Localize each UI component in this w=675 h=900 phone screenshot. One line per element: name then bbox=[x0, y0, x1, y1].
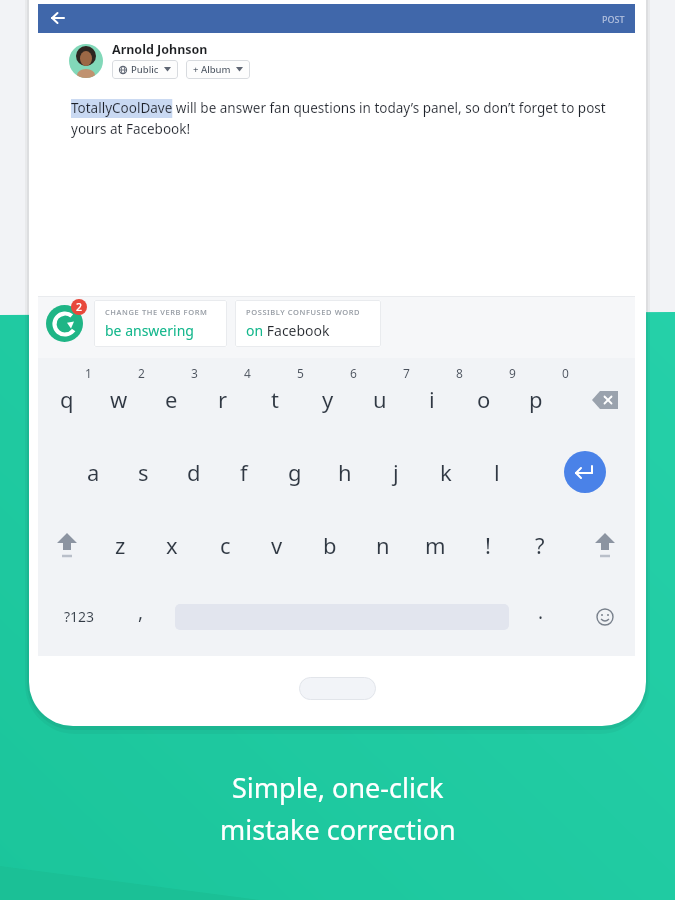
staticText: TotallyCoolDave will be answer fan quest… bbox=[71, 99, 619, 138]
staticText: 6 bbox=[350, 365, 357, 381]
staticText: v bbox=[271, 530, 283, 560]
staticText: ? bbox=[535, 530, 545, 560]
staticText: ! bbox=[485, 530, 491, 560]
staticText: e bbox=[165, 384, 178, 414]
staticText: s bbox=[138, 457, 149, 487]
button[interactable] bbox=[596, 608, 614, 626]
button[interactable] bbox=[51, 11, 65, 25]
staticText: h bbox=[338, 457, 352, 487]
staticText: POSSIBLY CONFUSED WORD bbox=[246, 307, 361, 317]
staticText: w bbox=[110, 384, 128, 414]
staticText: i bbox=[429, 384, 435, 414]
button[interactable] bbox=[592, 390, 620, 410]
staticText: 8 bbox=[456, 365, 463, 381]
staticText: b bbox=[323, 530, 337, 560]
staticText: r bbox=[218, 384, 228, 414]
staticText: u bbox=[373, 384, 387, 414]
staticText: o bbox=[477, 384, 491, 414]
button[interactable] bbox=[564, 451, 606, 493]
staticText: n bbox=[376, 530, 390, 560]
button[interactable]: Public bbox=[112, 60, 178, 79]
staticText: z bbox=[115, 530, 126, 560]
staticText: f bbox=[240, 457, 248, 487]
staticText: , bbox=[138, 599, 144, 625]
staticText: g bbox=[288, 457, 302, 487]
button[interactable] bbox=[46, 305, 83, 342]
button[interactable]: POSSIBLY CONFUSED WORD bbox=[235, 300, 381, 347]
staticText: 2 bbox=[138, 365, 145, 381]
button[interactable]: CHANGE THE VERB FORM bbox=[94, 300, 227, 347]
button[interactable] bbox=[56, 533, 78, 557]
staticText: 9 bbox=[509, 365, 516, 381]
staticText: Arnold Johnson bbox=[112, 41, 208, 58]
staticText: k bbox=[440, 457, 452, 487]
staticText: mistake correction bbox=[220, 811, 456, 848]
staticText: on Facebook bbox=[246, 321, 330, 340]
staticText: 5 bbox=[297, 365, 304, 381]
staticText: 7 bbox=[403, 365, 410, 381]
staticText: ?123 bbox=[64, 607, 95, 626]
staticText: 1 bbox=[85, 365, 92, 381]
staticText: POST bbox=[602, 13, 625, 25]
button[interactable] bbox=[594, 533, 616, 557]
staticText: x bbox=[166, 530, 178, 560]
staticText: 3 bbox=[191, 365, 198, 381]
staticText: 4 bbox=[244, 365, 251, 381]
staticText: be answering bbox=[105, 321, 194, 340]
staticText: m bbox=[425, 530, 446, 560]
staticText: d bbox=[187, 457, 201, 487]
staticText: . bbox=[538, 599, 544, 625]
staticText: t bbox=[271, 384, 279, 414]
button[interactable]: POST bbox=[602, 13, 625, 25]
staticText: q bbox=[60, 384, 74, 414]
staticText: p bbox=[529, 384, 543, 414]
staticText: + Album bbox=[193, 63, 231, 76]
staticText: Simple, one-click bbox=[232, 769, 444, 806]
staticText: y bbox=[322, 384, 334, 414]
staticText: a bbox=[87, 457, 100, 487]
button[interactable]: + Album bbox=[186, 60, 250, 79]
staticText: 0 bbox=[562, 365, 569, 381]
staticText: c bbox=[220, 530, 231, 560]
staticText: 2 bbox=[76, 300, 83, 314]
staticText: Public bbox=[131, 63, 159, 76]
staticText: CHANGE THE VERB FORM bbox=[105, 307, 208, 317]
staticText: j bbox=[393, 457, 399, 487]
staticText: l bbox=[494, 457, 500, 487]
